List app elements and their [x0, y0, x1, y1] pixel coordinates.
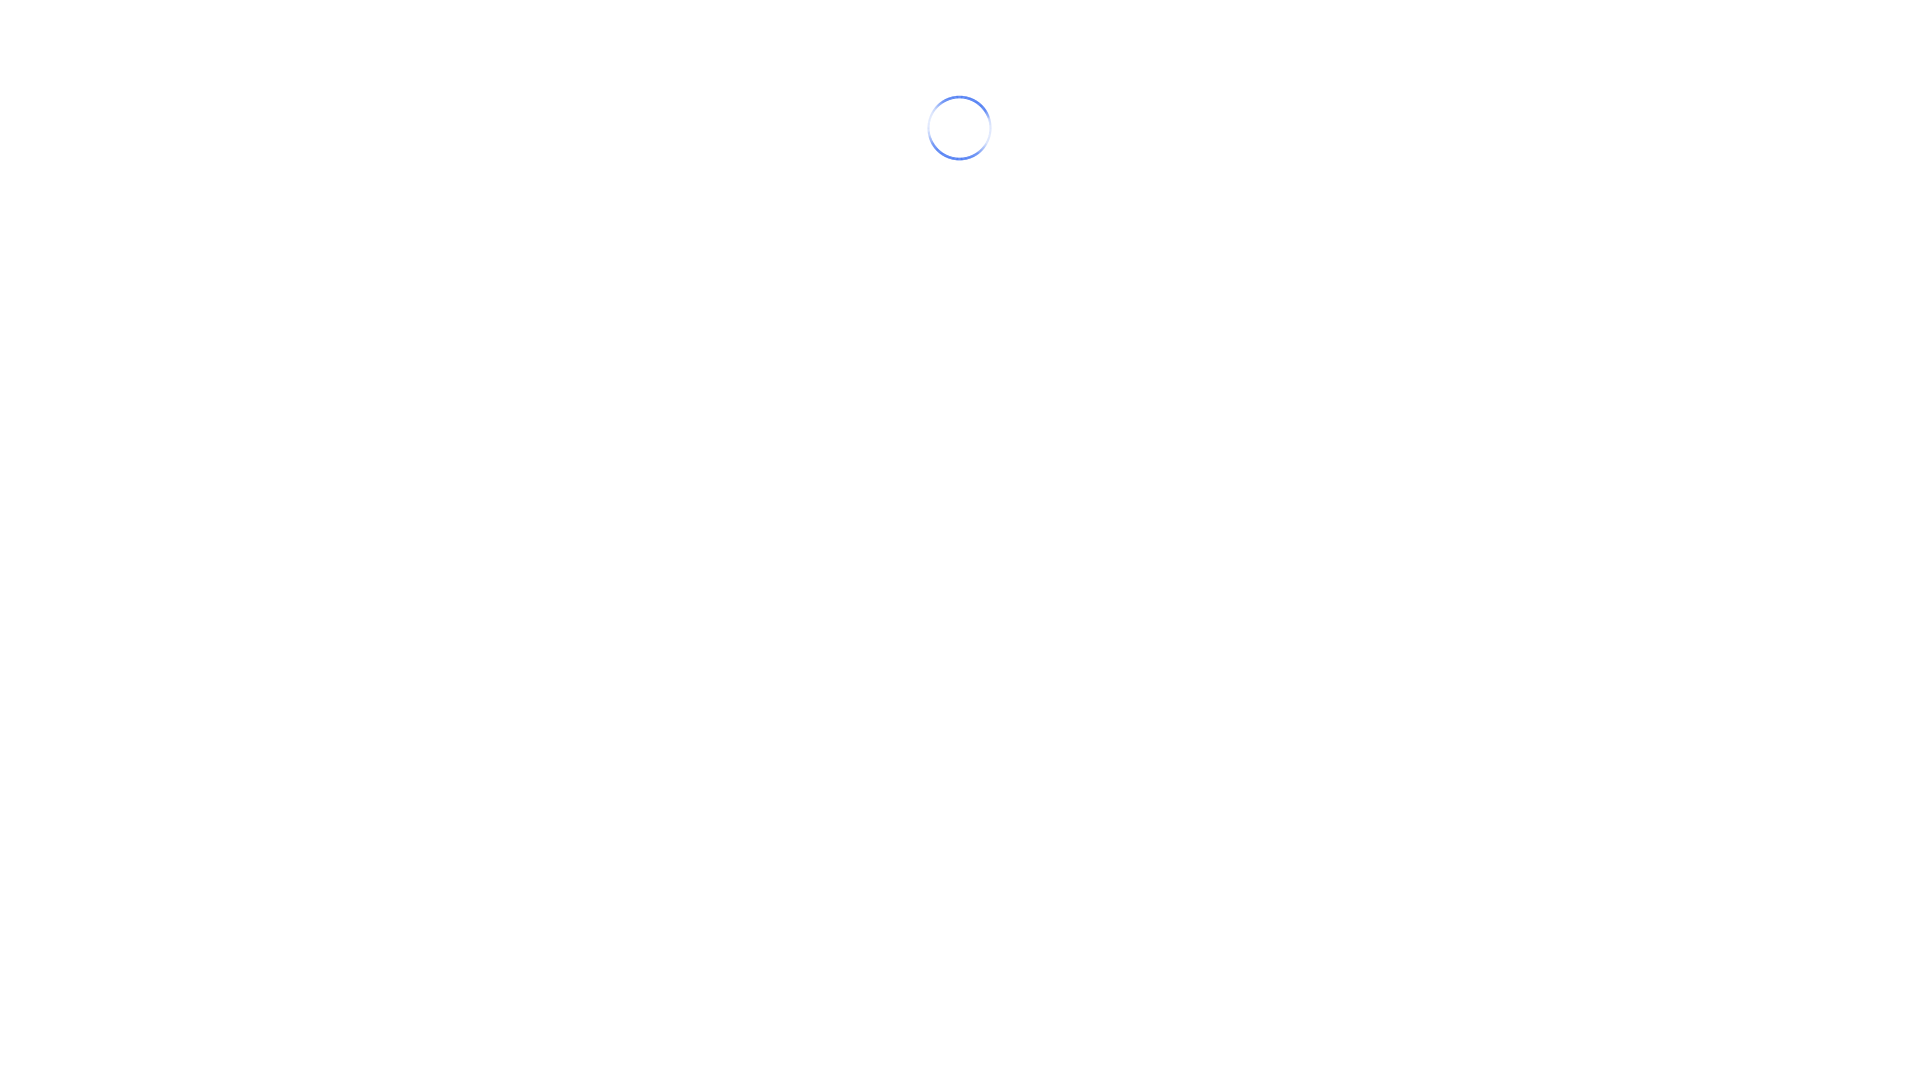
group: Loading [923, 92, 995, 164]
